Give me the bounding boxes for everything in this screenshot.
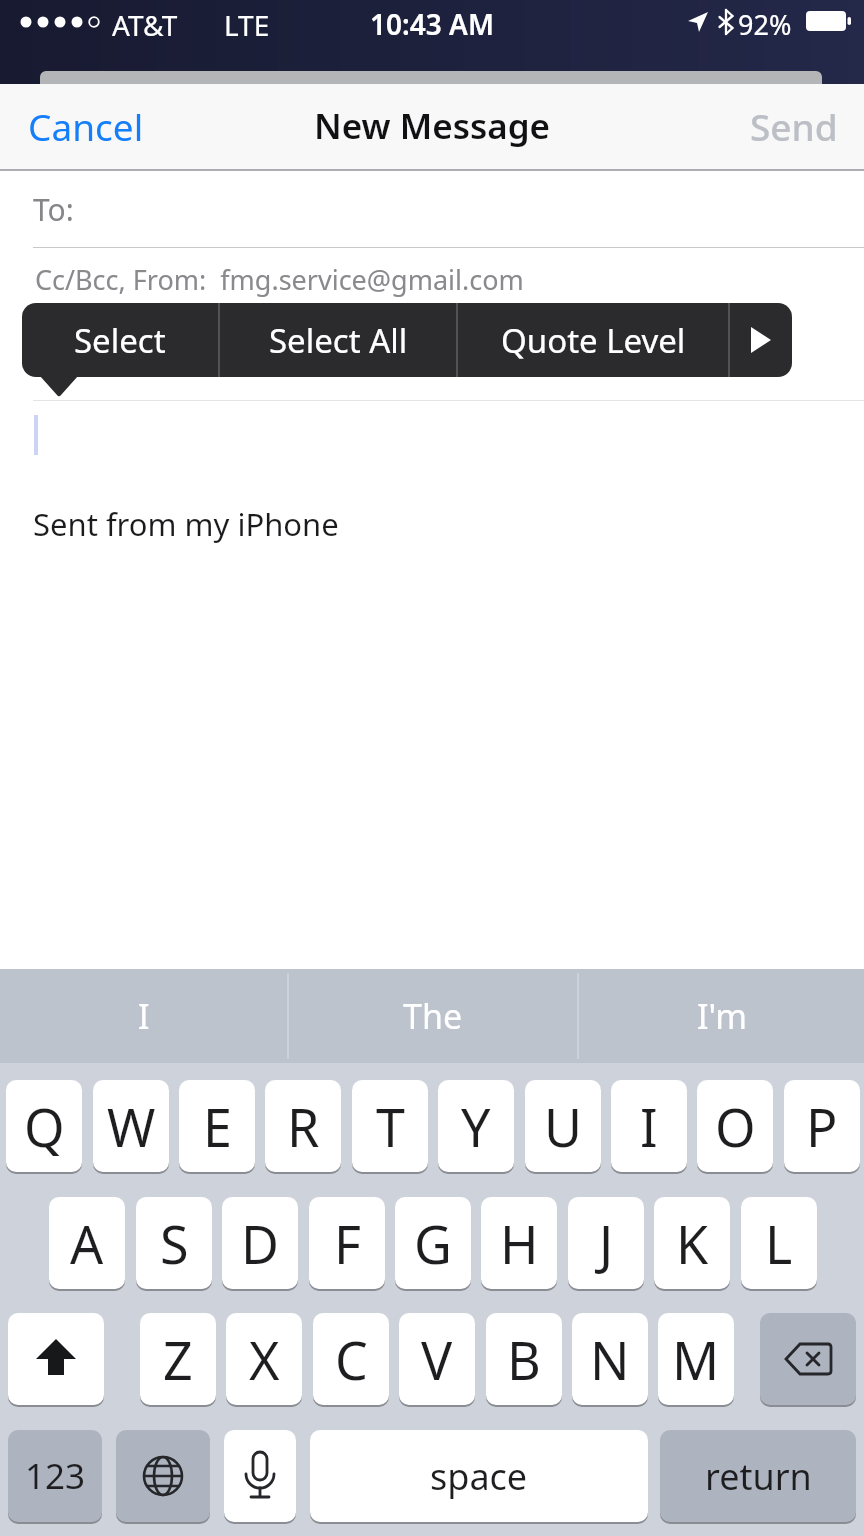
staticText: New Message (314, 102, 551, 150)
staticText: V (421, 1324, 453, 1395)
button[interactable]: P (784, 1080, 860, 1172)
staticText: Z (163, 1324, 193, 1395)
staticText: F (334, 1208, 361, 1279)
staticText: C (335, 1324, 368, 1395)
staticText: Select (74, 318, 166, 363)
staticText: Cancel (28, 101, 144, 151)
staticText: Quote Level (501, 318, 686, 363)
button[interactable]: Select All (220, 303, 456, 377)
staticText: Cc/Bcc, From: fmg.service@gmail.com (35, 261, 524, 298)
button[interactable]: O (697, 1080, 773, 1172)
staticText: I (640, 1091, 658, 1162)
staticText: G (414, 1208, 452, 1279)
staticText: To: (33, 189, 74, 230)
staticText: T (376, 1091, 405, 1162)
button[interactable]: W (93, 1080, 169, 1172)
staticText: K (676, 1208, 709, 1279)
staticText: R (287, 1091, 320, 1162)
staticText: E (203, 1091, 232, 1162)
staticText: LTE (224, 6, 270, 44)
button[interactable]: 123 (8, 1430, 102, 1522)
staticText: Sent from my iPhone (33, 503, 339, 545)
staticText: Select All (269, 318, 408, 363)
button[interactable]: B (486, 1313, 562, 1405)
staticText: I (138, 993, 150, 1039)
staticText: 123 (25, 1452, 86, 1500)
staticText: U (544, 1091, 583, 1162)
button[interactable]: To: (0, 170, 864, 248)
button[interactable]: U (525, 1080, 601, 1172)
staticText: P (806, 1091, 838, 1162)
button[interactable]: N (572, 1313, 648, 1405)
staticText: L (765, 1208, 793, 1279)
button[interactable]: A (49, 1197, 125, 1289)
staticText: O (715, 1091, 756, 1162)
button[interactable]: S (136, 1197, 212, 1289)
button[interactable] (116, 1430, 210, 1522)
button[interactable] (224, 1430, 296, 1522)
button[interactable]: C (313, 1313, 389, 1405)
button[interactable]: J (568, 1197, 644, 1289)
button[interactable] (8, 1313, 104, 1405)
button[interactable]: Send (690, 96, 838, 156)
button[interactable]: return (660, 1430, 856, 1522)
staticText: 92% (738, 6, 792, 43)
staticText: space (430, 1452, 528, 1501)
button[interactable]: G (395, 1197, 471, 1289)
staticText: 10:43 AM (370, 5, 494, 43)
staticText: Y (461, 1091, 491, 1162)
button[interactable]: Cc/Bcc, From: fmg.service@gmail.com (0, 248, 864, 310)
button[interactable]: I (611, 1080, 687, 1172)
button[interactable]: H (481, 1197, 557, 1289)
button[interactable]: M (658, 1313, 734, 1405)
button[interactable]: Z (140, 1313, 216, 1405)
staticText: N (590, 1324, 630, 1395)
button[interactable]: V (399, 1313, 475, 1405)
staticText: J (599, 1208, 614, 1279)
button[interactable]: K (654, 1197, 730, 1289)
button[interactable]: R (265, 1080, 341, 1172)
button[interactable] (760, 1313, 856, 1405)
button[interactable]: Y (438, 1080, 514, 1172)
button[interactable]: L (741, 1197, 817, 1289)
staticText: S (160, 1208, 189, 1279)
button[interactable]: I'm (579, 969, 864, 1063)
staticText: Send (750, 101, 838, 151)
staticText: I'm (697, 993, 747, 1039)
staticText: M (672, 1324, 720, 1395)
button[interactable]: E (179, 1080, 255, 1172)
button[interactable]: Q (6, 1080, 82, 1172)
button[interactable]: Cancel (20, 96, 152, 156)
staticText: A (70, 1208, 104, 1279)
button[interactable]: The (289, 969, 577, 1063)
staticText: return (705, 1452, 812, 1501)
button[interactable] (730, 303, 792, 377)
button[interactable]: F (309, 1197, 385, 1289)
button[interactable]: T (352, 1080, 428, 1172)
staticText: The (403, 993, 463, 1039)
staticText: AT&T (112, 6, 178, 44)
staticText: Q (24, 1091, 65, 1162)
button[interactable]: Select (22, 303, 218, 377)
staticText: H (500, 1208, 539, 1279)
button[interactable]: D (222, 1197, 298, 1289)
staticText: X (249, 1324, 280, 1395)
staticText: D (241, 1208, 279, 1279)
button[interactable]: X (226, 1313, 302, 1405)
staticText: W (107, 1091, 156, 1162)
button[interactable]: I (0, 969, 287, 1063)
staticText: B (507, 1324, 541, 1395)
button[interactable]: Quote Level (458, 303, 728, 377)
button[interactable]: space (310, 1430, 648, 1522)
